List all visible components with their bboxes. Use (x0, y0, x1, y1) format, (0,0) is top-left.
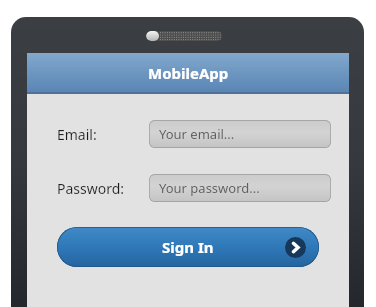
staticText: MobileApp (148, 63, 229, 83)
button[interactable]: Your password... (149, 174, 331, 202)
button[interactable]: Sign In (57, 227, 319, 267)
staticText: Email: (57, 125, 97, 144)
staticText: Sign In (162, 237, 214, 257)
staticText: Password: (57, 179, 125, 198)
other: Sign in (285, 237, 306, 258)
staticText: Your password... (159, 179, 260, 197)
staticText: Your email... (159, 125, 235, 143)
button[interactable]: Your email... (149, 120, 331, 148)
